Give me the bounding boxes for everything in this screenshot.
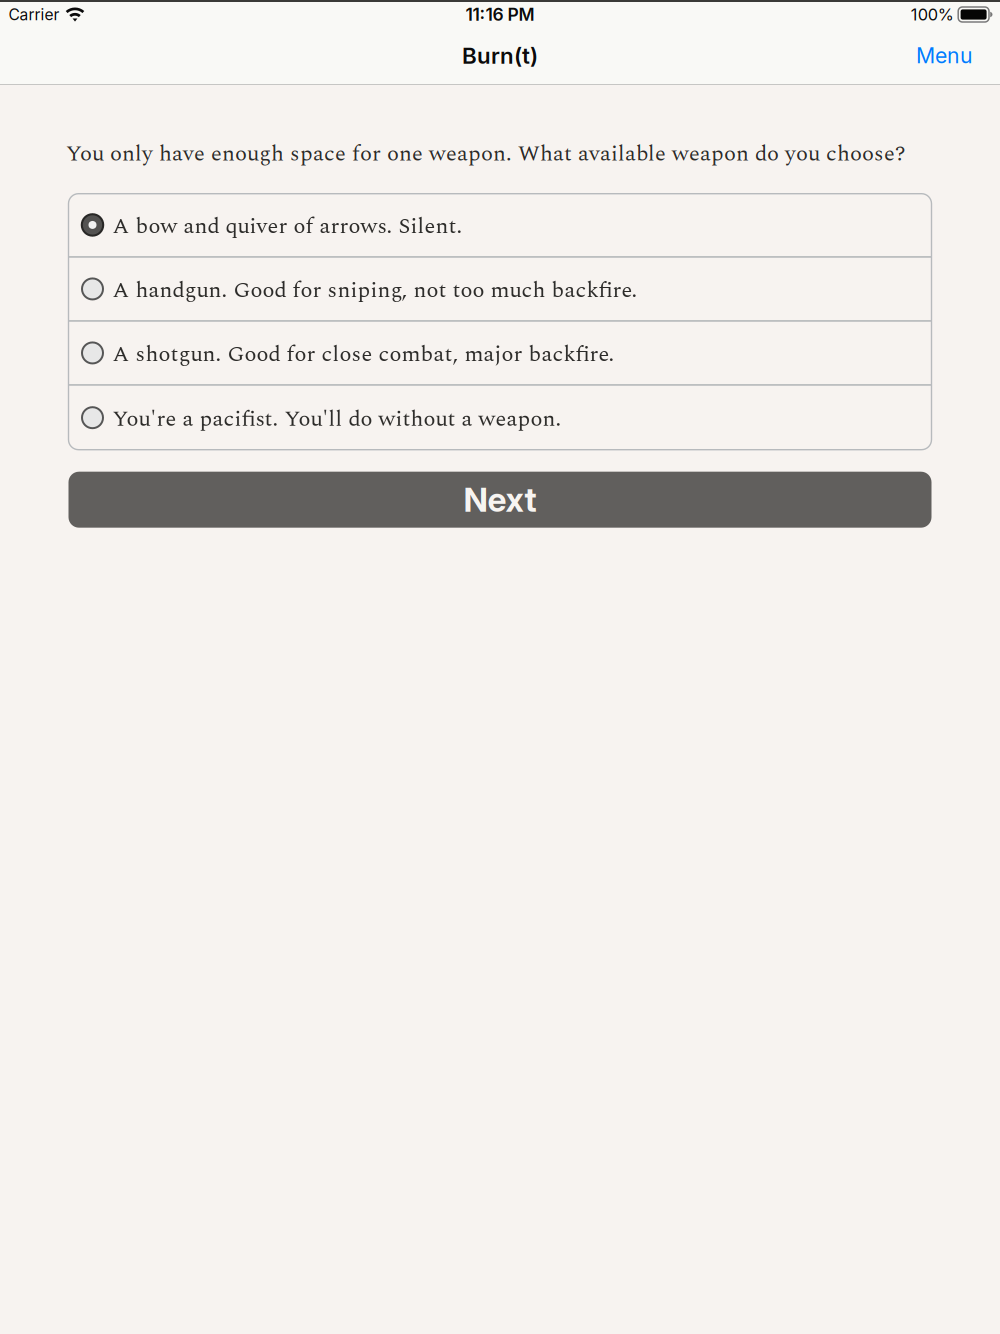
staticText: You only have enough space for one weapo…: [66, 137, 906, 171]
staticText: Next: [463, 480, 536, 520]
staticText: Carrier: [8, 5, 59, 24]
staticText: You're a pacifist. You'll do without a w…: [112, 402, 561, 436]
button[interactable]: A shotgun. Good for close combat, major …: [68, 322, 931, 386]
button[interactable]: Menu: [902, 33, 987, 78]
staticText: Menu: [916, 43, 973, 68]
button[interactable]: Next: [68, 472, 931, 528]
button[interactable]: A handgun. Good for sniping, not too muc…: [68, 258, 931, 322]
staticText: 11:16 PM: [465, 4, 534, 25]
button[interactable]: A bow and quiver of arrows. Silent.: [68, 194, 931, 258]
button[interactable]: You're a pacifist. You'll do without a w…: [68, 386, 931, 450]
staticText: A handgun. Good for sniping, not too muc…: [112, 274, 637, 307]
staticText: A bow and quiver of arrows. Silent.: [112, 210, 462, 243]
staticText: 100%: [911, 5, 954, 24]
staticText: Burn(t): [462, 42, 538, 69]
staticText: A shotgun. Good for close combat, major …: [112, 338, 614, 371]
